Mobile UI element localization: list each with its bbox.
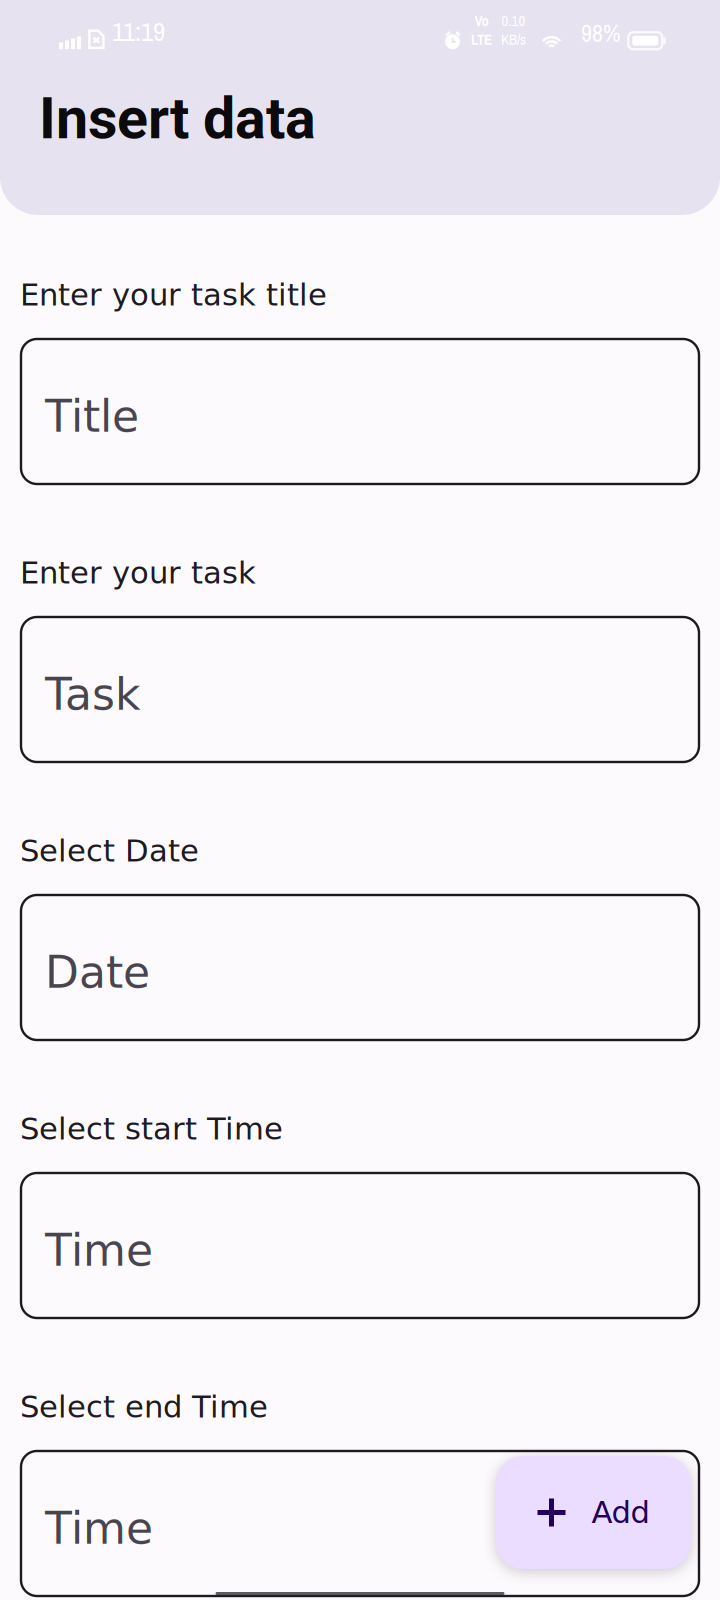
- button[interactable]: Time: [21, 1451, 699, 1596]
- staticText: Title: [45, 391, 139, 442]
- staticText: Vo: [474, 11, 488, 30]
- staticText: Time: [45, 1503, 153, 1554]
- button[interactable]: Add: [496, 1456, 691, 1569]
- staticText: Enter your task title: [20, 277, 327, 313]
- staticText: Select end Time: [20, 1389, 268, 1425]
- staticText: Task: [45, 669, 140, 720]
- staticText: LTE: [471, 29, 492, 49]
- staticText: Enter your task: [20, 555, 256, 591]
- staticText: Select start Time: [20, 1111, 283, 1147]
- staticText: Time: [45, 1225, 153, 1276]
- button[interactable]: Time: [21, 1173, 699, 1318]
- staticText: 98%: [581, 17, 620, 49]
- staticText: KB/s: [501, 29, 526, 49]
- staticText: 0.10: [501, 11, 525, 30]
- button[interactable]: Task: [21, 617, 699, 762]
- staticText: Date: [45, 947, 150, 998]
- staticText: 11:19: [112, 13, 165, 49]
- button[interactable]: Date: [21, 895, 699, 1040]
- staticText: Insert data: [39, 85, 316, 152]
- button[interactable]: Title: [21, 339, 699, 484]
- staticText: Select Date: [20, 833, 199, 869]
- staticText: Add: [591, 1495, 649, 1530]
